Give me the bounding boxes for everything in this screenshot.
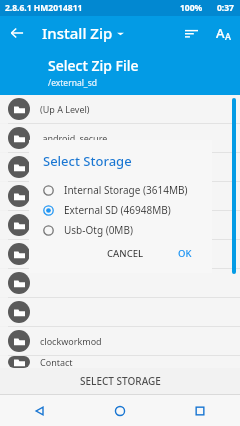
button[interactable]: Recents [160, 395, 240, 426]
staticText: A [225, 30, 231, 42]
staticText: Usb-Otg (0MB) [64, 223, 133, 237]
staticText: Internal Storage (3614MB) [64, 183, 188, 197]
staticText: clockworkmod [40, 335, 102, 347]
staticText: Install Zip [42, 23, 113, 43]
button[interactable]: Back [0, 16, 34, 50]
button[interactable]: clockworkmod [0, 327, 240, 355]
button[interactable]: (Up A Level) [0, 95, 240, 123]
staticText: Select Zip File [48, 56, 139, 75]
staticText: A [216, 24, 225, 42]
staticText: Select Storage [43, 152, 132, 170]
button[interactable] [0, 298, 240, 326]
staticText: SELECT STORAGE [80, 374, 161, 388]
staticText: (Up A Level) [40, 103, 90, 115]
button[interactable] [0, 211, 240, 239]
button[interactable] [0, 182, 240, 210]
button[interactable]: Contact [0, 356, 240, 368]
button[interactable]: Text size [206, 16, 240, 50]
staticText: Contact [40, 356, 73, 368]
button[interactable] [0, 240, 240, 268]
button[interactable]: Install Zip [42, 23, 176, 43]
button[interactable]: SELECT STORAGE [0, 368, 240, 394]
button[interactable]: CANCEL [101, 244, 150, 263]
staticText: CANCEL [107, 247, 144, 260]
button[interactable]: .android_secure [0, 124, 240, 152]
staticText: 100% [180, 2, 203, 14]
staticText: 2.8.6.1 HM2014811 [5, 2, 83, 14]
button[interactable]: Sort [176, 18, 206, 48]
button[interactable] [0, 269, 240, 297]
button[interactable]: External SD (46948MB) [29, 200, 212, 220]
staticText: 0:37 [217, 2, 234, 14]
button[interactable]: Back [0, 395, 80, 426]
staticText: /external_sd [48, 77, 97, 89]
staticText: OK [178, 247, 192, 260]
button[interactable] [0, 153, 240, 181]
button[interactable]: Internal Storage (3614MB) [29, 180, 212, 200]
button[interactable]: OK [172, 244, 198, 263]
button[interactable]: Usb-Otg (0MB) [29, 220, 212, 240]
staticText: External SD (46948MB) [64, 203, 171, 217]
button[interactable]: Home [80, 395, 160, 426]
staticText: .android_secure [40, 132, 108, 144]
